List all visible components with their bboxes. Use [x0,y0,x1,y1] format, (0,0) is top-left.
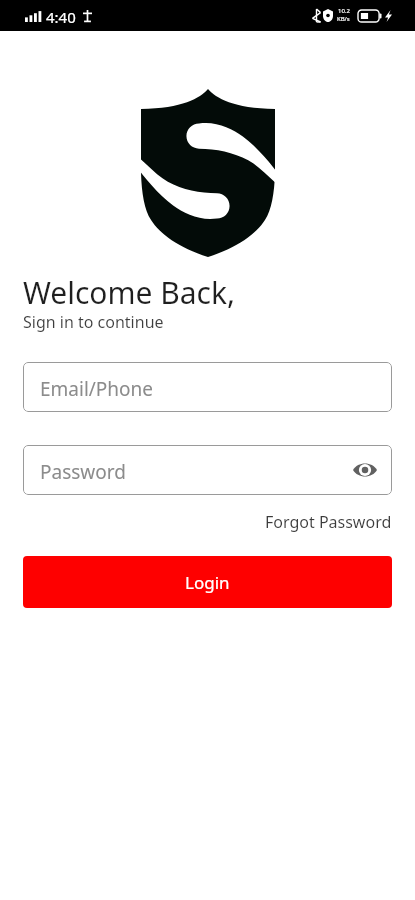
staticText: 10.2 [338,7,350,15]
button[interactable]: Login [23,556,392,608]
other: Show password [353,461,377,479]
staticText: Welcome Back, [23,272,236,313]
button[interactable]: Forgot Password [265,511,415,533]
staticText: 4:40 [46,7,76,27]
staticText: Password [40,459,126,485]
button[interactable]: Email/Phone [23,362,392,412]
staticText: Email/Phone [40,376,154,402]
staticText: KB/s [337,15,350,23]
button[interactable]: Password [23,445,392,495]
staticText: Sign in to continue [23,311,164,333]
staticText: Login [185,571,230,594]
